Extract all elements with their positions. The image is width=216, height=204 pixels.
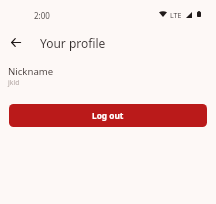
staticText: Nickname xyxy=(8,65,54,78)
staticText: jkld xyxy=(8,78,20,87)
staticText: Log out xyxy=(92,110,124,121)
staticText: Your profile xyxy=(40,35,106,51)
button[interactable]: Back xyxy=(5,32,26,53)
button[interactable]: Log out xyxy=(9,104,207,127)
staticText: 2:00 xyxy=(34,10,50,21)
staticText: LTE xyxy=(170,11,182,21)
